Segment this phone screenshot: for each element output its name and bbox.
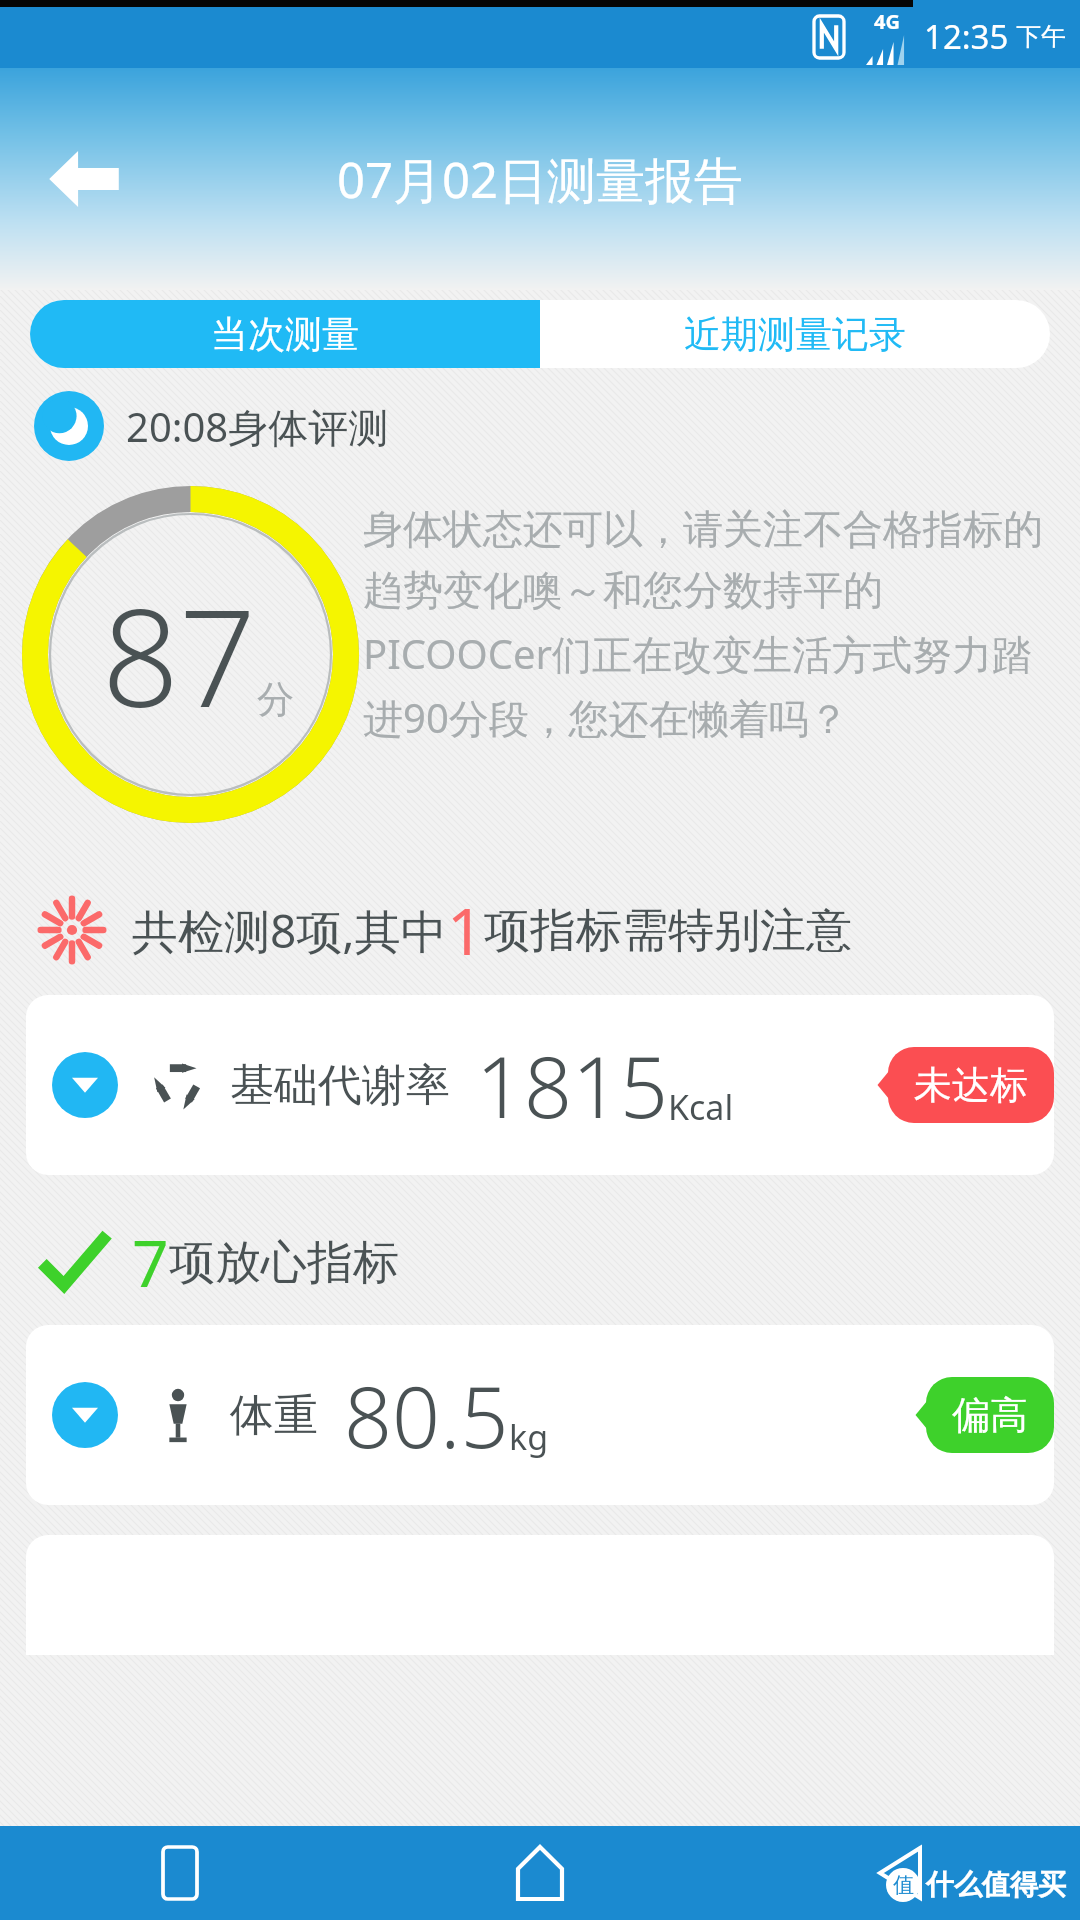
staticText: 80.5 (344, 1358, 509, 1472)
button[interactable] (26, 1325, 1054, 1505)
button[interactable]: 未达标 (888, 1047, 1054, 1123)
staticText: 基础代谢率 (230, 1058, 450, 1113)
staticText: 分 (257, 676, 294, 723)
button[interactable]: 偏高 (926, 1377, 1054, 1453)
staticText: 87 (102, 563, 257, 747)
staticText: 1815 (476, 1028, 668, 1142)
staticText: 未达标 (914, 1061, 1028, 1109)
staticText: 偏高 (952, 1391, 1028, 1439)
staticText: kg (509, 1414, 549, 1460)
staticText: 共检测8项,其中 (132, 899, 447, 962)
staticText: 当次测量 (211, 311, 359, 358)
button[interactable]: Back (36, 131, 132, 227)
button[interactable]: 近期测量记录 (540, 300, 1050, 368)
staticText: 身体状态还可以，请关注不合格指标的趋势变化噢～和您分数持平的PICOOCer们正… (363, 504, 1058, 745)
button[interactable] (26, 995, 1054, 1175)
staticText: 项指标需特别注意 (484, 902, 852, 960)
staticText: 近期测量记录 (684, 311, 906, 358)
button[interactable]: Home (360, 1826, 720, 1920)
staticText: Kcal (668, 1084, 734, 1130)
button[interactable]: Recents (0, 1826, 360, 1920)
staticText: 项放心指标 (169, 1234, 399, 1292)
staticText: 下午 (1016, 21, 1066, 52)
staticText: 什么值得买 (926, 1867, 1066, 1902)
staticText: 体重 (230, 1388, 318, 1443)
staticText: 12:35 (924, 14, 1009, 59)
staticText: 07月02日测量报告 (337, 146, 744, 213)
staticText: 4G (874, 8, 900, 35)
staticText: 7 (132, 1219, 169, 1306)
button[interactable]: Back (720, 1826, 1080, 1920)
staticText: 1 (447, 887, 484, 974)
staticText: 20:08身体评测 (126, 399, 389, 454)
staticText: 值 (893, 1872, 914, 1898)
button[interactable]: 当次测量 (30, 300, 540, 368)
